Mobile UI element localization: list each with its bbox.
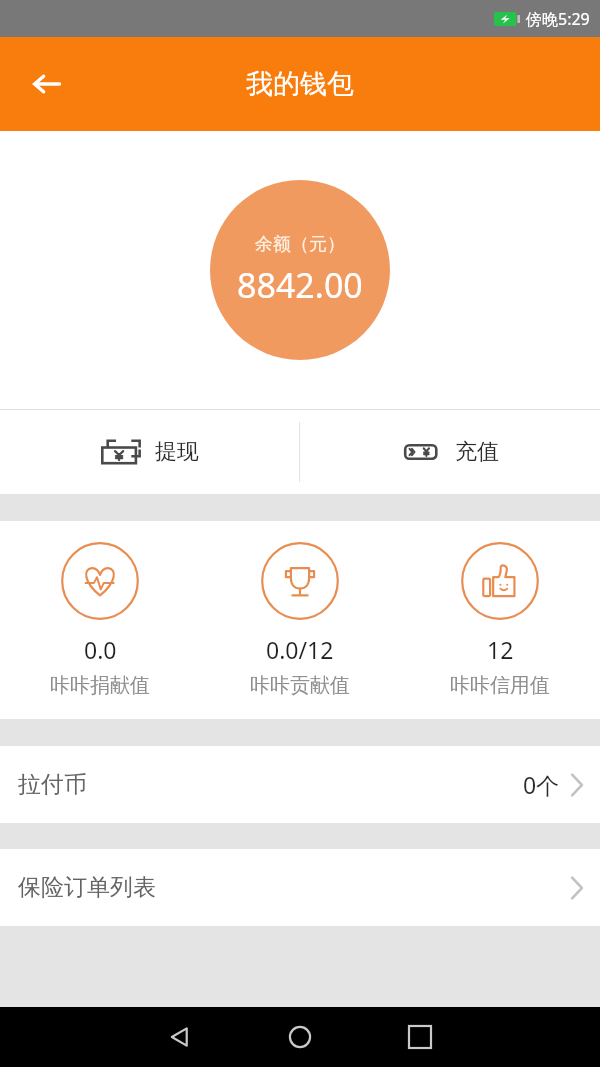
staticText: 我的钱包	[246, 67, 354, 101]
button[interactable]: Home	[240, 1007, 360, 1067]
staticText: 咔咔捐献值	[50, 673, 150, 698]
button[interactable]: 提现	[0, 410, 299, 494]
button[interactable]: 0.0	[0, 521, 200, 719]
staticText: 8842.00	[237, 262, 363, 308]
staticText: 咔咔贡献值	[250, 673, 350, 698]
staticText: 咔咔信用值	[450, 673, 550, 698]
staticText: 0.0	[84, 634, 117, 665]
staticText: 充值	[455, 438, 499, 466]
staticText: 余额（元）	[255, 233, 345, 256]
button[interactable]: 保险订单列表	[0, 849, 600, 926]
staticText: 傍晚5:29	[526, 8, 590, 30]
staticText: 12	[487, 634, 514, 665]
button[interactable]: 0.0/12	[200, 521, 400, 719]
staticText: 保险订单列表	[18, 873, 156, 902]
button[interactable]: Back	[120, 1007, 240, 1067]
button[interactable]: Recents	[360, 1007, 480, 1067]
button[interactable]: 拉付币	[0, 746, 600, 823]
button[interactable]: Back	[18, 56, 74, 112]
button[interactable]: 12	[400, 521, 600, 719]
staticText: 拉付币	[18, 770, 87, 799]
staticText: 提现	[155, 438, 199, 466]
staticText: 0个	[523, 769, 560, 800]
button[interactable]: 充值	[300, 410, 600, 494]
staticText: 0.0/12	[266, 634, 334, 665]
